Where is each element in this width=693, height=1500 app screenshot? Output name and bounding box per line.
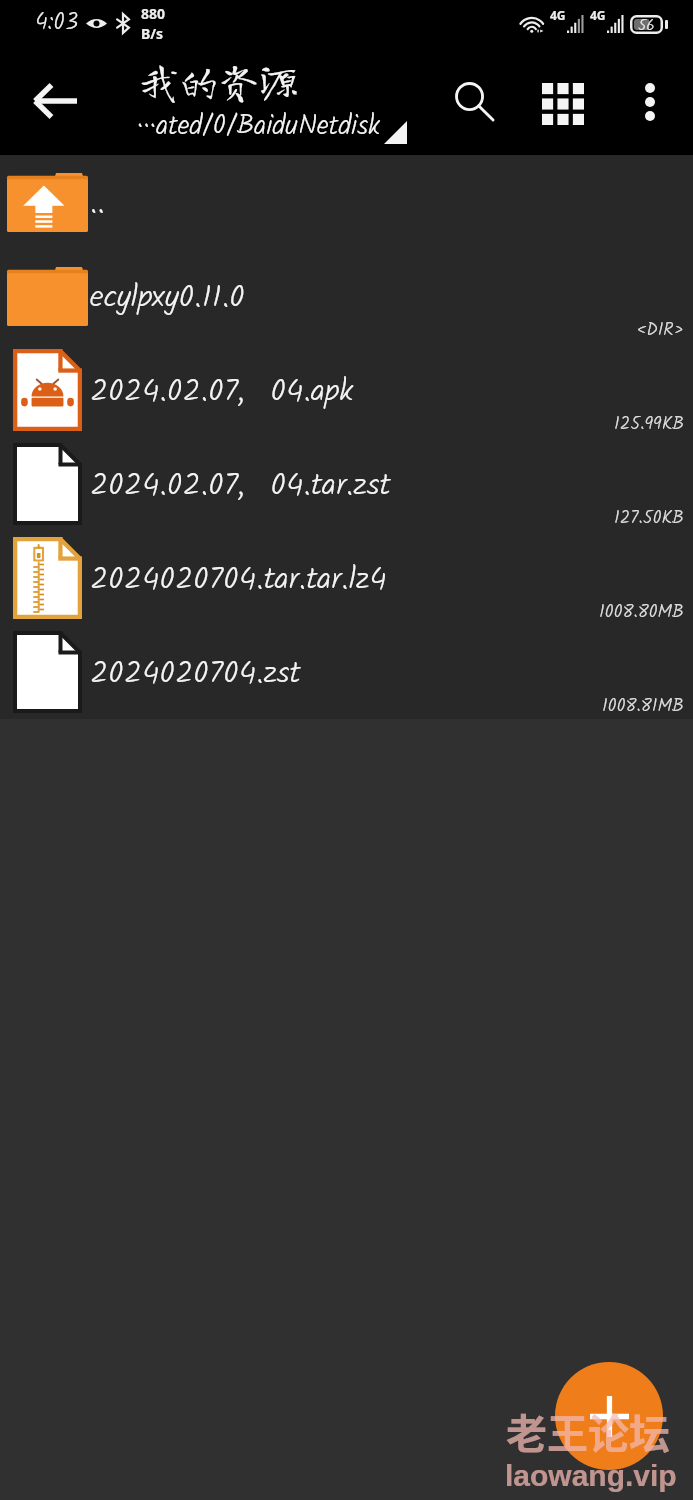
staticText: 4G — [590, 7, 606, 23]
button[interactable]: ecylpxy0.11.0 — [0, 249, 693, 343]
staticText: 125.99KB — [614, 410, 684, 439]
staticText: B/s — [141, 24, 164, 43]
staticText: 老王论坛 — [506, 1401, 670, 1460]
button[interactable]: 我的资源 — [130, 47, 440, 155]
staticText: 4G — [550, 7, 566, 23]
staticText: 4:03 — [35, 5, 79, 42]
staticText: 2024.02.07, 04.apk — [90, 368, 354, 418]
button[interactable]: 2024020704.tar.tar.lz4 — [0, 531, 693, 625]
staticText: 1008.81MB — [602, 692, 684, 721]
staticText: ···ated/0/BaiduNetdisk — [137, 105, 381, 148]
button[interactable]: .. — [0, 155, 693, 249]
staticText: 56 — [638, 14, 655, 33]
button[interactable]: Add new — [555, 1362, 663, 1470]
button[interactable]: 2024.02.07, 04.apk — [0, 343, 693, 437]
staticText: laowang.vip — [505, 1459, 677, 1493]
staticText: 2024020704.tar.tar.lz4 — [90, 556, 387, 606]
staticText: 880 — [141, 4, 166, 23]
staticText: 127.50KB — [614, 504, 684, 533]
button[interactable]: Search — [431, 58, 519, 146]
button[interactable]: More options — [607, 59, 693, 145]
staticText: .. — [90, 180, 105, 230]
button[interactable]: Switch to grid view — [519, 58, 607, 146]
staticText: 1008.80MB — [599, 598, 684, 627]
button[interactable]: Back — [10, 56, 100, 146]
button[interactable]: 2024.02.07, 04.tar.zst — [0, 437, 693, 531]
staticText: 2024.02.07, 04.tar.zst — [90, 462, 391, 512]
button[interactable]: 2024020704.zst — [0, 625, 693, 719]
staticText: 2024020704.zst — [90, 650, 301, 700]
staticText: 我的资源 — [139, 61, 299, 101]
staticText: ecylpxy0.11.0 — [90, 274, 245, 324]
staticText: <DIR> — [636, 316, 684, 345]
